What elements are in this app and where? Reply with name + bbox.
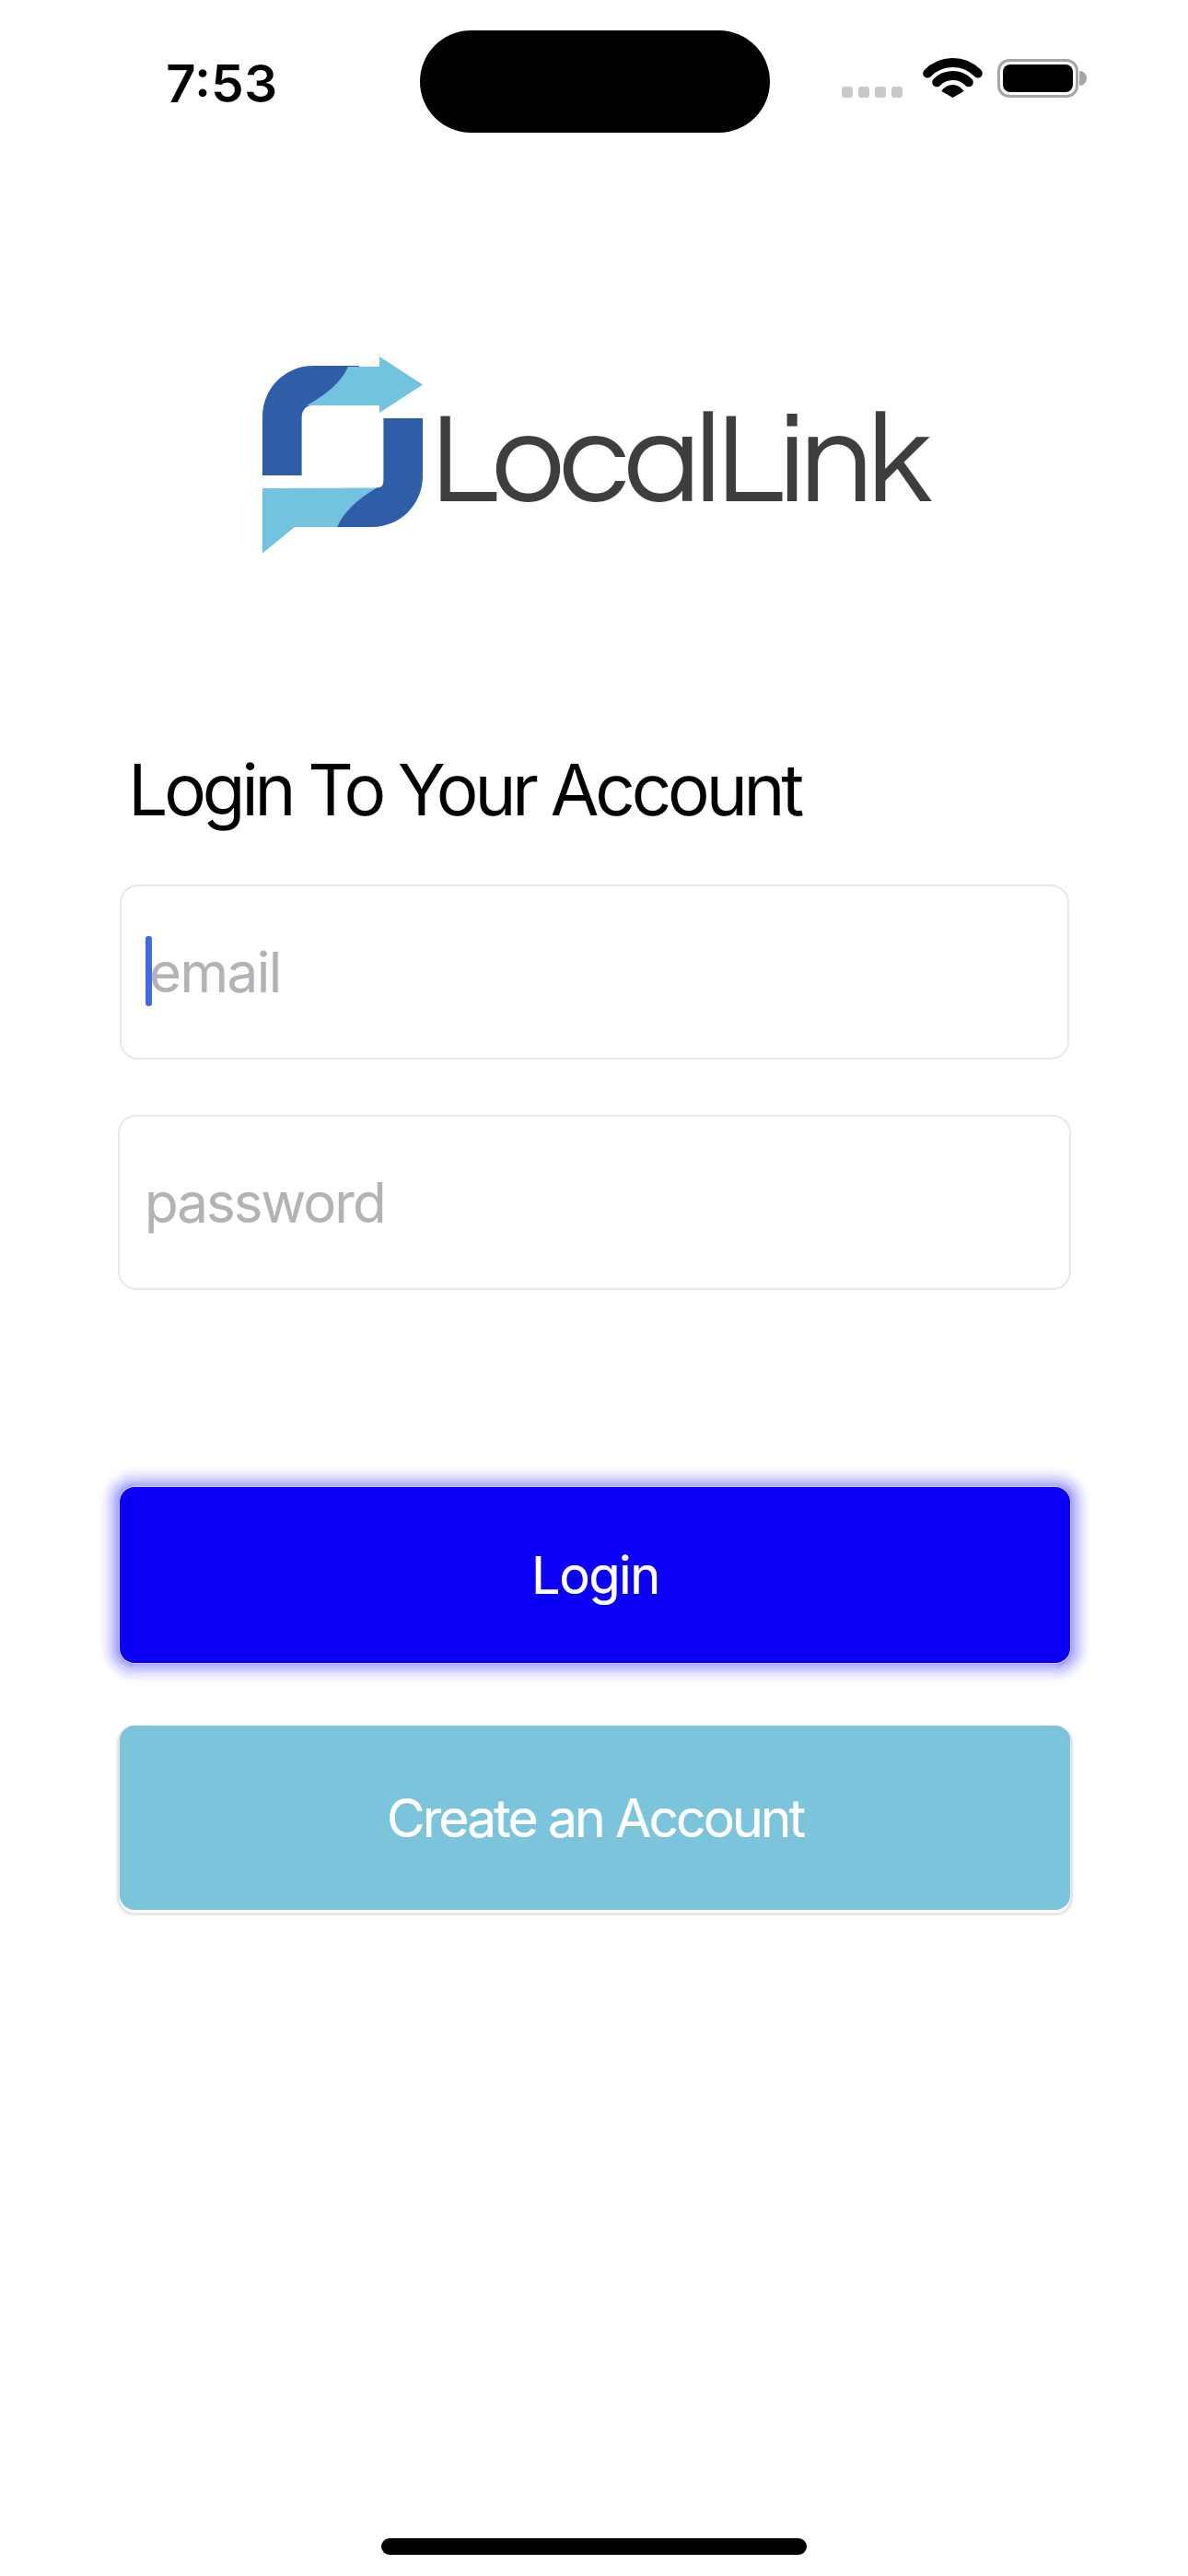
staticText: 7:53	[166, 52, 278, 111]
staticText: LocalLink	[430, 395, 927, 528]
button[interactable]: Create an Account	[120, 1726, 1070, 1910]
staticText: password	[145, 1169, 385, 1236]
staticText: Create an Account	[387, 1786, 804, 1850]
button[interactable]: email	[120, 884, 1069, 1060]
staticText: email	[149, 939, 281, 1006]
staticText: Login	[531, 1544, 659, 1607]
button[interactable]: password	[118, 1115, 1071, 1290]
staticText: Login To Your Account	[128, 746, 800, 832]
button[interactable]: Login	[120, 1487, 1070, 1663]
